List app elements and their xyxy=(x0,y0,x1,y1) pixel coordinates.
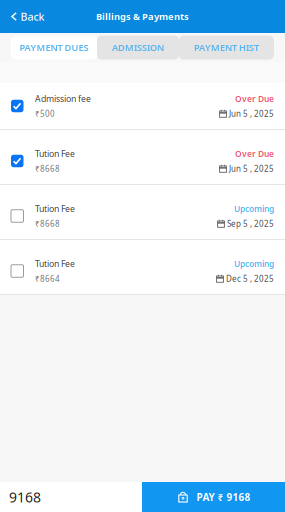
staticText: Billings & Payments xyxy=(96,10,189,23)
button[interactable]: PAYMENT DUES xyxy=(11,35,97,59)
staticText: PAY ₹ 9168 xyxy=(196,490,250,504)
button[interactable]: PAY ₹ 9168 xyxy=(142,482,285,512)
staticText: Dec 5 , 2025 xyxy=(226,273,274,284)
button[interactable]: Back xyxy=(0,2,51,31)
button[interactable]: PAYMENT HIST xyxy=(179,35,274,59)
staticText: Over Due xyxy=(235,93,274,104)
staticText: Back xyxy=(21,9,45,24)
staticText: Tution Fee xyxy=(35,258,75,269)
staticText: PAYMENT DUES xyxy=(19,41,88,54)
button[interactable]: ADMISSION xyxy=(97,35,179,59)
staticText: ₹500 xyxy=(35,108,55,119)
staticText: ₹8664 xyxy=(35,273,60,284)
button[interactable]: Admission fee xyxy=(0,83,285,129)
staticText: Tution Fee xyxy=(35,203,75,214)
button[interactable]: Tution Fee xyxy=(0,138,285,184)
staticText: Over Due xyxy=(235,148,274,159)
staticText: Admission fee xyxy=(35,93,91,104)
staticText: Upcoming xyxy=(234,258,274,269)
staticText: 9168 xyxy=(9,488,41,506)
staticText: ADMISSION xyxy=(112,41,164,54)
staticText: Tution Fee xyxy=(35,148,75,159)
staticText: PAYMENT HIST xyxy=(194,41,259,54)
staticText: Jun 5 , 2025 xyxy=(229,108,274,119)
staticText: ₹8668 xyxy=(35,218,60,229)
staticText: Upcoming xyxy=(234,203,274,214)
staticText: Jun 5 , 2025 xyxy=(229,163,274,174)
staticText: ₹8668 xyxy=(35,163,60,174)
button[interactable]: Tution Fee xyxy=(0,248,285,294)
button[interactable]: Tution Fee xyxy=(0,193,285,239)
staticText: Sep 5 , 2025 xyxy=(227,218,274,229)
